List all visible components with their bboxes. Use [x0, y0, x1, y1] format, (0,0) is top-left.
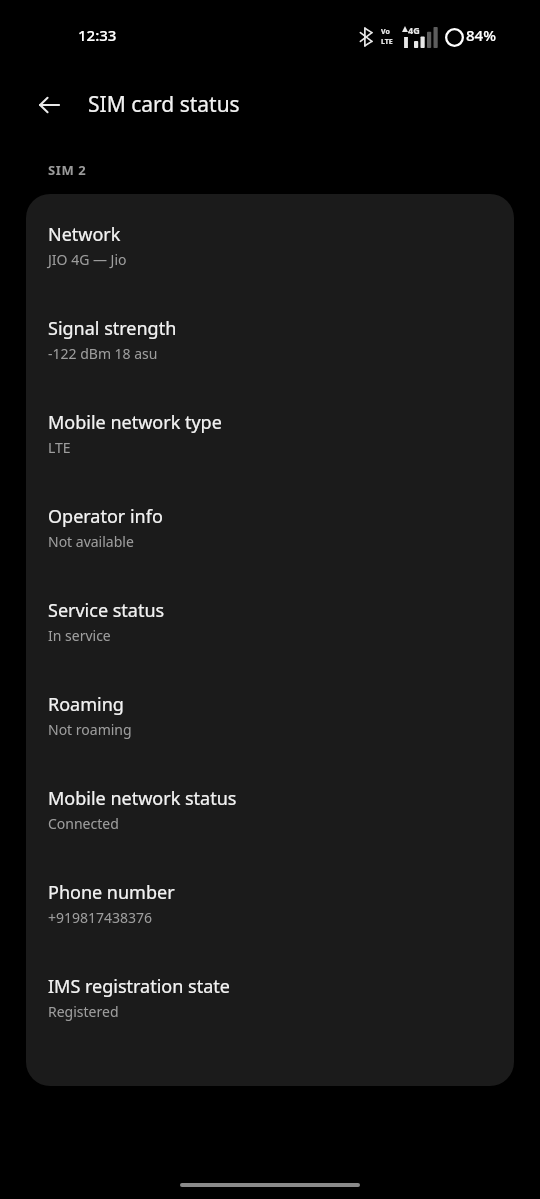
staticText: Phone number — [48, 880, 175, 905]
staticText: Roaming — [48, 692, 124, 717]
button[interactable]: Phone number — [26, 880, 514, 927]
staticText: JIO 4G — Jio — [48, 250, 127, 269]
staticText: LTE — [381, 37, 393, 47]
button[interactable]: Mobile network type — [26, 410, 514, 457]
staticText: In service — [48, 626, 111, 645]
staticText: Mobile network status — [48, 786, 237, 811]
staticText: -122 dBm 18 asu — [48, 344, 158, 363]
staticText: SIM 2 — [48, 161, 87, 179]
staticText: Not roaming — [48, 720, 132, 739]
button[interactable]: IMS registration state — [26, 974, 514, 1021]
staticText: Signal strength — [48, 316, 177, 341]
staticText: 84% — [466, 25, 496, 45]
button[interactable]: Operator info — [26, 504, 514, 551]
staticText: Network — [48, 222, 121, 247]
button[interactable]: Service status — [26, 598, 514, 645]
staticText: Connected — [48, 814, 119, 833]
button[interactable]: Mobile network status — [26, 786, 514, 833]
staticText: Registered — [48, 1002, 119, 1021]
button[interactable]: Back — [25, 81, 73, 129]
staticText: IMS registration state — [48, 974, 230, 999]
staticText: Mobile network type — [48, 410, 222, 435]
staticText: SIM card status — [88, 90, 240, 119]
staticText: Operator info — [48, 504, 163, 529]
staticText: Service status — [48, 598, 165, 623]
staticText: LTE — [48, 438, 71, 457]
staticText: +919817438376 — [48, 908, 153, 927]
staticText: Vo — [381, 27, 390, 37]
staticText: 4G — [408, 24, 420, 36]
staticText: Not available — [48, 532, 134, 551]
button[interactable]: Roaming — [26, 692, 514, 739]
button[interactable]: Network — [26, 222, 514, 269]
button[interactable]: Signal strength — [26, 316, 514, 363]
staticText: 12:33 — [78, 25, 117, 45]
